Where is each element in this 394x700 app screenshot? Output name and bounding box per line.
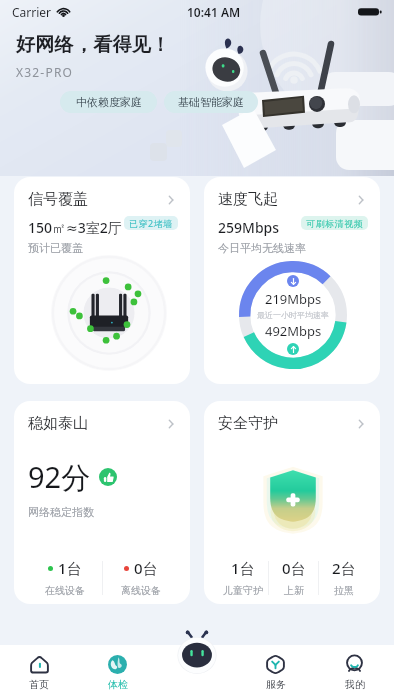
staticText: 已穿2堵墙 bbox=[129, 217, 173, 229]
button[interactable]: 1台 bbox=[218, 558, 268, 597]
button[interactable]: 速度飞起 bbox=[218, 190, 368, 209]
staticText: 0台 bbox=[134, 558, 158, 578]
staticText: 中依赖度家庭 bbox=[76, 95, 142, 109]
button[interactable]: 安全守护 bbox=[204, 401, 380, 604]
button[interactable]: 首页 bbox=[0, 645, 78, 700]
staticText: 492Mbps bbox=[265, 322, 322, 340]
button[interactable]: 速度飞起 bbox=[204, 177, 380, 384]
button[interactable]: 我的 bbox=[315, 645, 394, 700]
staticText: 在线设备 bbox=[45, 584, 85, 597]
staticText: 预计已覆盖 bbox=[28, 241, 83, 255]
staticText: 信号覆盖 bbox=[28, 190, 88, 209]
staticText: 219Mbps bbox=[265, 290, 322, 308]
staticText: Carrier bbox=[12, 4, 52, 20]
button[interactable]: 0台 bbox=[103, 558, 178, 597]
staticText: 稳如泰山 bbox=[28, 414, 88, 433]
staticText: 10:41 AM bbox=[187, 4, 241, 20]
button[interactable]: 1台 bbox=[28, 558, 102, 597]
button[interactable]: 信号覆盖 bbox=[28, 190, 178, 209]
staticText: 离线设备 bbox=[121, 584, 161, 597]
button[interactable]: 中依赖度家庭 bbox=[60, 91, 157, 113]
staticText: 速度飞起 bbox=[218, 190, 278, 209]
button[interactable]: 服务 bbox=[236, 645, 315, 700]
staticText: 最近一小时平均速率 bbox=[257, 310, 329, 320]
staticText: 可刷标清视频 bbox=[306, 218, 363, 229]
staticText: X32-PRO bbox=[16, 64, 74, 80]
button[interactable]: AI Assistant bbox=[172, 625, 222, 675]
staticText: 安全守护 bbox=[218, 414, 278, 433]
staticText: 0台 bbox=[282, 558, 306, 578]
button[interactable]: 安全守护 bbox=[218, 414, 368, 433]
staticText: 基础智能家庭 bbox=[178, 95, 244, 109]
staticText: 好网络，看得见！ bbox=[16, 33, 171, 57]
staticText: 259Mbps bbox=[218, 218, 280, 237]
staticText: 2台 bbox=[332, 558, 356, 578]
button[interactable]: 稳如泰山 bbox=[28, 414, 178, 433]
button[interactable]: 基础智能家庭 bbox=[164, 91, 258, 113]
button[interactable]: 稳如泰山 bbox=[14, 401, 190, 604]
staticText: 92分 bbox=[28, 457, 91, 497]
button[interactable]: 2台 bbox=[319, 558, 368, 597]
staticText: 网络稳定指数 bbox=[28, 505, 94, 519]
button[interactable]: 0台 bbox=[269, 558, 318, 597]
button[interactable]: 信号覆盖 bbox=[14, 177, 190, 384]
staticText: 拉黑 bbox=[334, 584, 354, 597]
staticText: 体检 bbox=[108, 678, 128, 691]
staticText: 服务 bbox=[266, 678, 286, 691]
staticText: 今日平均无线速率 bbox=[218, 241, 306, 255]
staticText: 上新 bbox=[284, 584, 304, 597]
staticText: 我的 bbox=[345, 678, 365, 691]
staticText: 1台 bbox=[231, 558, 255, 578]
button[interactable]: 体检 bbox=[78, 645, 157, 700]
staticText: 首页 bbox=[29, 678, 49, 691]
staticText: 150㎡≈3室2厅 bbox=[28, 218, 122, 237]
staticText: 儿童守护 bbox=[223, 584, 263, 597]
staticText: 1台 bbox=[58, 558, 82, 578]
